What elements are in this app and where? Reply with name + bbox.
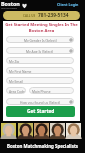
button[interactable]: My Age Is (Select) — [6, 47, 74, 54]
button[interactable]: How you found us (Select) — [6, 98, 74, 105]
button[interactable]: My Zip — [6, 57, 74, 64]
staticText: Get Started Meeting Singles In The Bosto… — [3, 22, 80, 33]
staticText: Boston — [1, 0, 20, 7]
button[interactable]: Client Login — [57, 2, 79, 7]
button[interactable]: CALL US — [3, 11, 80, 20]
button[interactable] — [50, 123, 65, 140]
staticText: My Zip — [9, 59, 20, 63]
button[interactable] — [34, 123, 49, 140]
staticText: CALL US — [23, 14, 36, 18]
button[interactable]: Boston — [1, 0, 28, 10]
staticText: Main Phone — [32, 89, 51, 93]
button[interactable]: Area Code — [6, 87, 26, 94]
button[interactable] — [18, 123, 33, 140]
staticText: My Gender Is (Select) — [24, 38, 57, 42]
staticText: 781-239-5134 — [38, 12, 69, 19]
staticText: My Age Is (Select) — [26, 49, 54, 53]
staticText: Get Started — [27, 108, 55, 115]
button[interactable] — [1, 123, 16, 140]
button[interactable]: Get Started — [6, 106, 75, 117]
staticText: My Email — [9, 79, 23, 83]
staticText: How you found us (Select) — [20, 100, 61, 104]
button[interactable] — [66, 123, 81, 140]
button[interactable]: My Email — [6, 77, 74, 84]
staticText: MATCHMAKERS — [1, 7, 17, 10]
staticText: My First Name — [9, 69, 32, 73]
staticText: Area Code — [9, 89, 25, 93]
staticText: Client Login — [57, 2, 79, 7]
button[interactable]: Main Phone — [29, 87, 74, 94]
staticText: Boston Matchmaking Specialists — [7, 143, 78, 149]
button[interactable]: My First Name — [6, 67, 74, 74]
button[interactable]: My Gender Is (Select) — [6, 36, 74, 43]
